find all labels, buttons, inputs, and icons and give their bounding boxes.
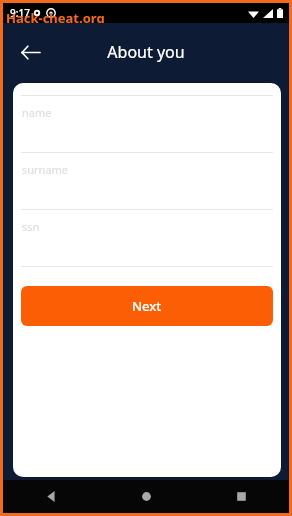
staticText: Next [132,297,162,315]
button[interactable]: Back [3,480,99,513]
button[interactable]: Back [14,36,46,68]
staticText: name [22,105,52,120]
button[interactable]: Recents [194,480,289,513]
staticText: surname [22,162,69,177]
button[interactable]: surname [13,152,281,209]
button[interactable]: Home [99,480,194,513]
button[interactable]: Next [21,286,273,326]
staticText: Hack-cheat.org [6,9,105,23]
button[interactable]: name [13,83,281,152]
staticText: 9:17 [10,6,30,20]
staticText: About you [107,41,185,63]
button[interactable]: ssn [13,209,281,266]
staticText: ssn [22,219,40,234]
